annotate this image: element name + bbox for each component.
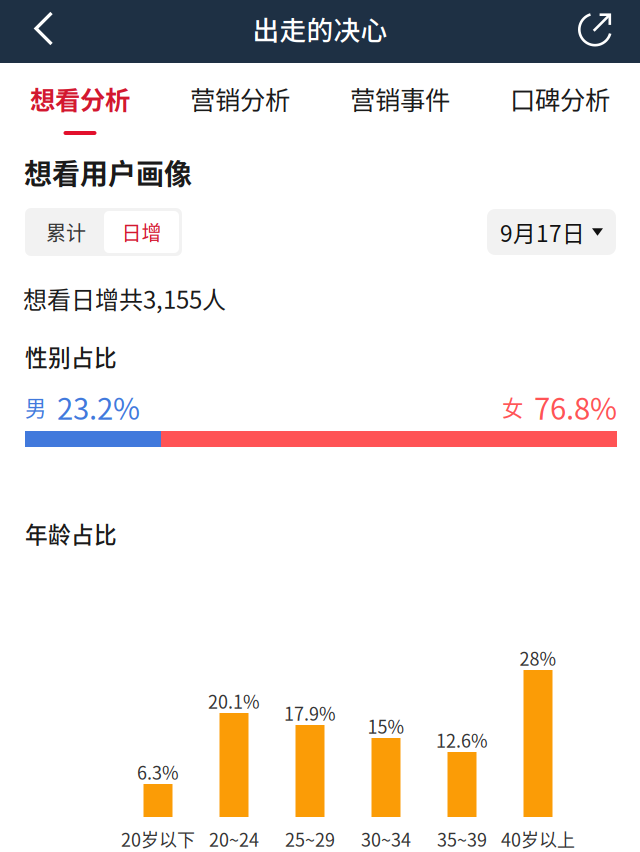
staticText: 25~29 — [285, 826, 335, 852]
staticText: 日增 — [121, 217, 161, 246]
button[interactable]: 日增 — [104, 211, 179, 253]
staticText: 想看分析 — [30, 80, 130, 117]
staticText: 20~24 — [209, 826, 259, 852]
button[interactable]: 累计 — [28, 211, 104, 253]
staticText: 15% — [367, 713, 404, 739]
staticText: 17.9% — [284, 700, 336, 726]
staticText: 口碑分析 — [510, 80, 610, 117]
staticText: 营销分析 — [190, 80, 290, 117]
staticText: 20岁以下 — [121, 826, 195, 852]
staticText: 男 — [25, 392, 46, 422]
staticText: 12.6% — [436, 727, 488, 753]
button[interactable]: 营销分析 — [160, 63, 320, 140]
staticText: 9月17日 — [500, 216, 585, 248]
staticText: 性别占比 — [25, 340, 117, 373]
staticText: 营销事件 — [350, 80, 450, 117]
button[interactable]: Back — [0, 0, 84, 63]
staticText: 想看用户画像 — [24, 152, 192, 192]
staticText: 年龄占比 — [25, 517, 117, 550]
staticText: 20.1% — [208, 688, 260, 714]
button[interactable]: Share — [550, 0, 640, 63]
button[interactable]: 口碑分析 — [480, 63, 640, 140]
staticText: 76.8% — [534, 386, 617, 428]
button[interactable]: 9月17日 — [487, 209, 616, 255]
staticText: 40岁以上 — [501, 826, 575, 852]
staticText: 6.3% — [137, 759, 179, 785]
staticText: 28% — [519, 645, 556, 671]
staticText: 35~39 — [437, 826, 487, 852]
staticText: 累计 — [46, 217, 86, 246]
staticText: 30~34 — [361, 826, 411, 852]
button[interactable]: 想看分析 — [0, 63, 160, 140]
button[interactable]: 营销事件 — [320, 63, 480, 140]
staticText: 23.2% — [57, 386, 140, 428]
staticText: 出走的决心 — [252, 9, 387, 48]
staticText: 想看日增共3,155人 — [23, 281, 226, 316]
staticText: 女 — [502, 392, 523, 422]
